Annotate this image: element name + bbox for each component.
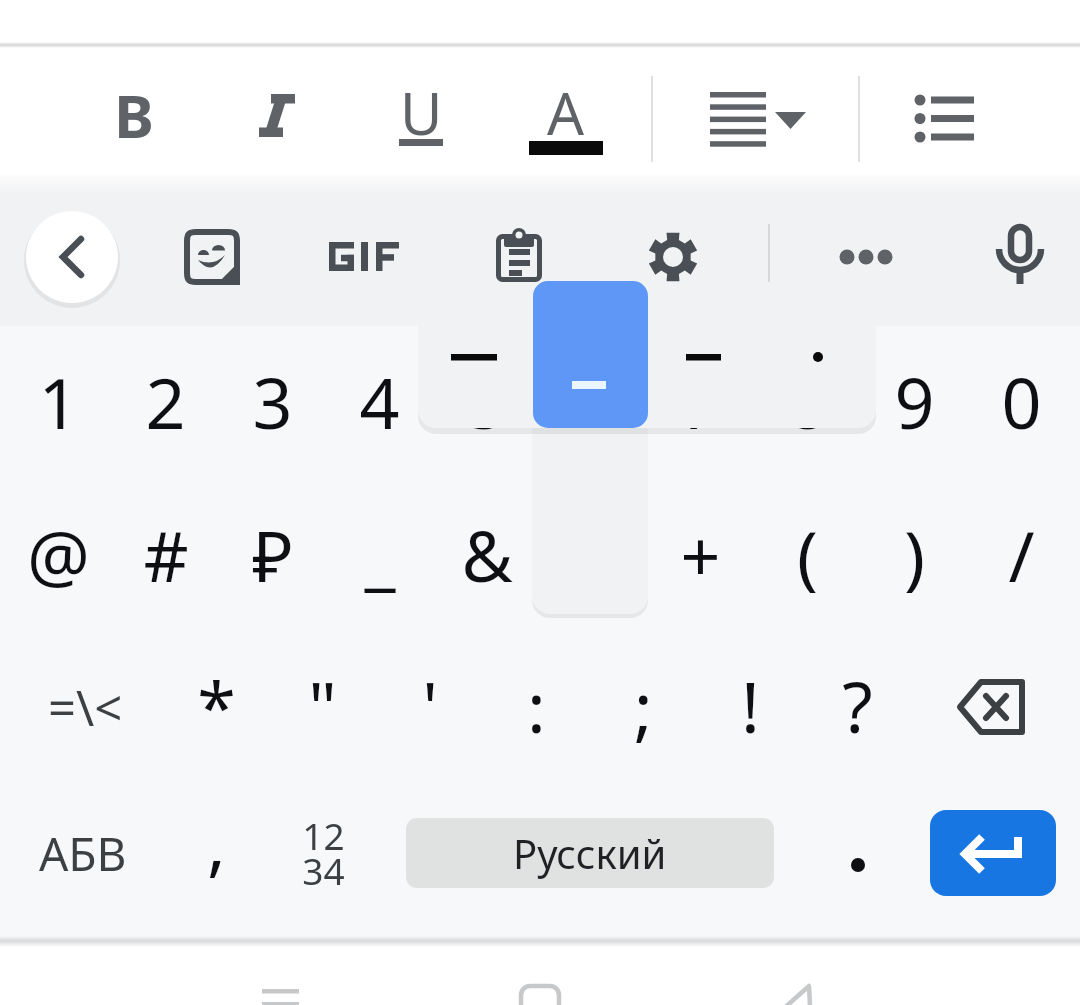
staticText: " xyxy=(308,658,337,753)
staticText: 1 xyxy=(38,354,79,449)
staticText: 9 xyxy=(894,354,935,449)
button[interactable]: + xyxy=(647,488,754,620)
button[interactable]: Stickers xyxy=(166,211,258,303)
staticText: АБВ xyxy=(39,822,127,885)
staticText: 8 xyxy=(787,354,828,449)
button[interactable]: ' xyxy=(376,639,483,771)
button[interactable]: АБВ xyxy=(20,790,145,916)
button[interactable]: 9 xyxy=(861,335,968,467)
staticText: 6 xyxy=(573,354,614,449)
button[interactable]: ( xyxy=(754,488,861,620)
button[interactable]: Recent apps xyxy=(240,955,330,1005)
button[interactable]: ) xyxy=(861,488,968,620)
staticText: =\< xyxy=(48,674,123,741)
staticText: ₽ xyxy=(252,507,293,602)
staticText: + xyxy=(680,507,721,602)
button[interactable]: 6 xyxy=(540,335,647,467)
staticText: A xyxy=(547,73,585,152)
staticText: ( xyxy=(797,507,818,602)
staticText: 3 xyxy=(252,354,293,449)
staticText: ' xyxy=(422,658,438,753)
button[interactable]: # xyxy=(112,488,219,620)
button[interactable]: * xyxy=(163,639,270,771)
staticText: 7 xyxy=(680,354,721,449)
button[interactable]: B xyxy=(86,72,182,158)
button[interactable]: Backspace xyxy=(938,641,1062,773)
button[interactable]: ! xyxy=(697,639,804,771)
staticText: ! xyxy=(741,658,760,753)
button[interactable]: @ xyxy=(5,488,112,620)
button[interactable]: GIF xyxy=(319,211,409,303)
staticText: ) xyxy=(904,507,925,602)
staticText: / xyxy=(1008,507,1035,602)
staticText: 4 xyxy=(359,354,400,449)
button[interactable]: & xyxy=(433,488,540,620)
button[interactable]: Voice input xyxy=(974,211,1066,303)
button[interactable]: Home xyxy=(495,955,585,1005)
button[interactable]: 1 xyxy=(5,335,112,467)
button[interactable]: 2 xyxy=(112,335,219,467)
button[interactable]: Settings xyxy=(627,211,719,303)
button[interactable]: _ xyxy=(326,488,433,620)
button[interactable]: ₽ xyxy=(219,488,326,620)
staticText: U xyxy=(400,73,443,152)
staticText: 2 xyxy=(145,354,186,449)
button[interactable]: Русский xyxy=(406,818,774,888)
button[interactable]: " xyxy=(269,639,376,771)
button[interactable]: , xyxy=(162,790,270,916)
staticText: , xyxy=(207,794,226,889)
staticText: Русский xyxy=(513,826,667,880)
staticText: : xyxy=(527,658,546,753)
button[interactable]: U xyxy=(373,69,469,155)
button[interactable]: Back xyxy=(26,211,118,303)
button[interactable]: ; xyxy=(590,639,697,771)
button[interactable]: / xyxy=(968,488,1075,620)
staticText: 12 34 xyxy=(302,810,345,896)
staticText: B xyxy=(114,74,154,156)
button[interactable]: 3 xyxy=(219,335,326,467)
staticText: _ xyxy=(364,507,396,602)
button[interactable]: Enter xyxy=(930,810,1056,896)
staticText: 5 xyxy=(466,354,507,449)
staticText: # xyxy=(143,507,189,602)
button[interactable]: A xyxy=(518,69,614,155)
button[interactable]: Clipboard xyxy=(473,211,565,303)
button[interactable]: ? xyxy=(804,639,911,771)
button[interactable]: 0 xyxy=(968,335,1075,467)
button[interactable]: 8 xyxy=(754,335,861,467)
button[interactable]: 5 xyxy=(433,335,540,467)
button[interactable]: Back xyxy=(755,955,845,1005)
staticText: * xyxy=(197,658,236,753)
button[interactable]: Period xyxy=(804,790,912,916)
staticText: @ xyxy=(27,507,90,602)
staticText: ; xyxy=(634,658,653,753)
button[interactable]: Numbers xyxy=(269,790,377,916)
button[interactable]: Paragraph alignment xyxy=(700,62,812,138)
staticText: & xyxy=(461,507,513,602)
button[interactable]: 4 xyxy=(326,335,433,467)
button[interactable]: =\< xyxy=(5,641,165,773)
button[interactable]: : xyxy=(483,639,590,771)
button[interactable]: 7 xyxy=(647,335,754,467)
staticText: ? xyxy=(842,658,873,753)
staticText: 0 xyxy=(1001,354,1042,449)
button[interactable]: Bulleted list xyxy=(898,62,996,138)
button[interactable]: More options xyxy=(820,211,912,303)
button[interactable]: Italic xyxy=(229,72,325,158)
